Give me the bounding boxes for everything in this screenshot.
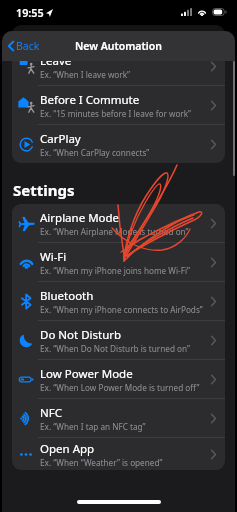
staticText: Bluetooth xyxy=(40,288,94,304)
button[interactable]: Wi-Fi xyxy=(12,243,225,282)
button[interactable]: Bluetooth xyxy=(12,282,225,321)
staticText: Ex. “When “Weather” is opened” xyxy=(40,457,163,468)
staticText: Before I Commute xyxy=(40,92,140,108)
button[interactable]: Before I Commute xyxy=(12,86,225,125)
staticText: Ex. “When CarPlay connects” xyxy=(40,147,150,158)
staticText: Do Not Disturb xyxy=(40,327,122,343)
staticText: Open App xyxy=(40,441,95,457)
button[interactable]: CarPlay xyxy=(12,125,225,163)
staticText: Ex. “When Do Not Disturb is turned on” xyxy=(40,343,190,354)
staticText: Back xyxy=(16,39,40,53)
button[interactable]: NFC xyxy=(12,399,225,438)
staticText: Low Power Mode xyxy=(40,366,133,382)
staticText: Ex. “When my iPhone joins home Wi-Fi” xyxy=(40,265,191,276)
button[interactable]: Open App xyxy=(12,438,225,470)
staticText: Ex. “When my iPhone connects to AirPods” xyxy=(40,304,203,315)
staticText: Ex. “When Low Power Mode is turned off” xyxy=(40,382,200,393)
button[interactable]: Back xyxy=(7,37,41,55)
staticText: Airplane Mode xyxy=(40,210,120,226)
button[interactable]: Leave xyxy=(12,47,225,86)
staticText: CarPlay xyxy=(40,131,81,147)
button[interactable]: Low Power Mode xyxy=(12,360,225,399)
staticText: Ex. “When Airplane Mode is turned on” xyxy=(40,226,189,237)
staticText: Ex. “15 minutes before I leave for work” xyxy=(40,108,192,119)
staticText: Wi-Fi xyxy=(40,249,67,265)
staticText: Settings xyxy=(13,180,75,200)
staticText: Ex. “When I leave work” xyxy=(40,69,131,80)
staticText: Leave xyxy=(40,53,72,69)
button[interactable]: Do Not Disturb xyxy=(12,321,225,360)
staticText: Ex. “When I tap an NFC tag” xyxy=(40,421,146,432)
button[interactable]: Airplane Mode xyxy=(12,204,225,243)
staticText: New Automation xyxy=(75,39,162,53)
staticText: 19:55 xyxy=(16,5,44,20)
staticText: NFC xyxy=(40,405,62,421)
